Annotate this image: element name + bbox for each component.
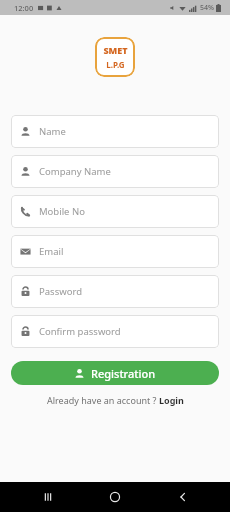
- staticText: Registration: [91, 366, 156, 381]
- staticText: 54%: [200, 3, 214, 13]
- staticText: Mobile No: [39, 205, 85, 218]
- button[interactable]: Company Name: [11, 155, 219, 188]
- button[interactable]: Email: [11, 235, 219, 268]
- staticText: L.P.G: [106, 59, 125, 70]
- staticText: Already have an account ?: [47, 394, 159, 406]
- staticText: Company Name: [39, 165, 111, 178]
- button[interactable]: Recents: [28, 482, 68, 512]
- button[interactable]: Name: [11, 115, 219, 148]
- button[interactable]: Confirm password: [11, 315, 219, 348]
- staticText: Login: [159, 394, 184, 406]
- staticText: Confirm password: [39, 325, 121, 338]
- staticText: Name: [39, 125, 66, 138]
- staticText: SMET: [103, 44, 128, 56]
- button[interactable]: Login: [159, 394, 184, 406]
- button[interactable]: Mobile No: [11, 195, 219, 228]
- button[interactable]: Home: [95, 482, 135, 512]
- staticText: 12:00: [14, 3, 34, 13]
- button[interactable]: Back: [163, 482, 203, 512]
- staticText: Password: [39, 285, 82, 298]
- button[interactable]: Password: [11, 275, 219, 308]
- button[interactable]: Registration: [11, 361, 219, 385]
- staticText: Email: [39, 245, 64, 258]
